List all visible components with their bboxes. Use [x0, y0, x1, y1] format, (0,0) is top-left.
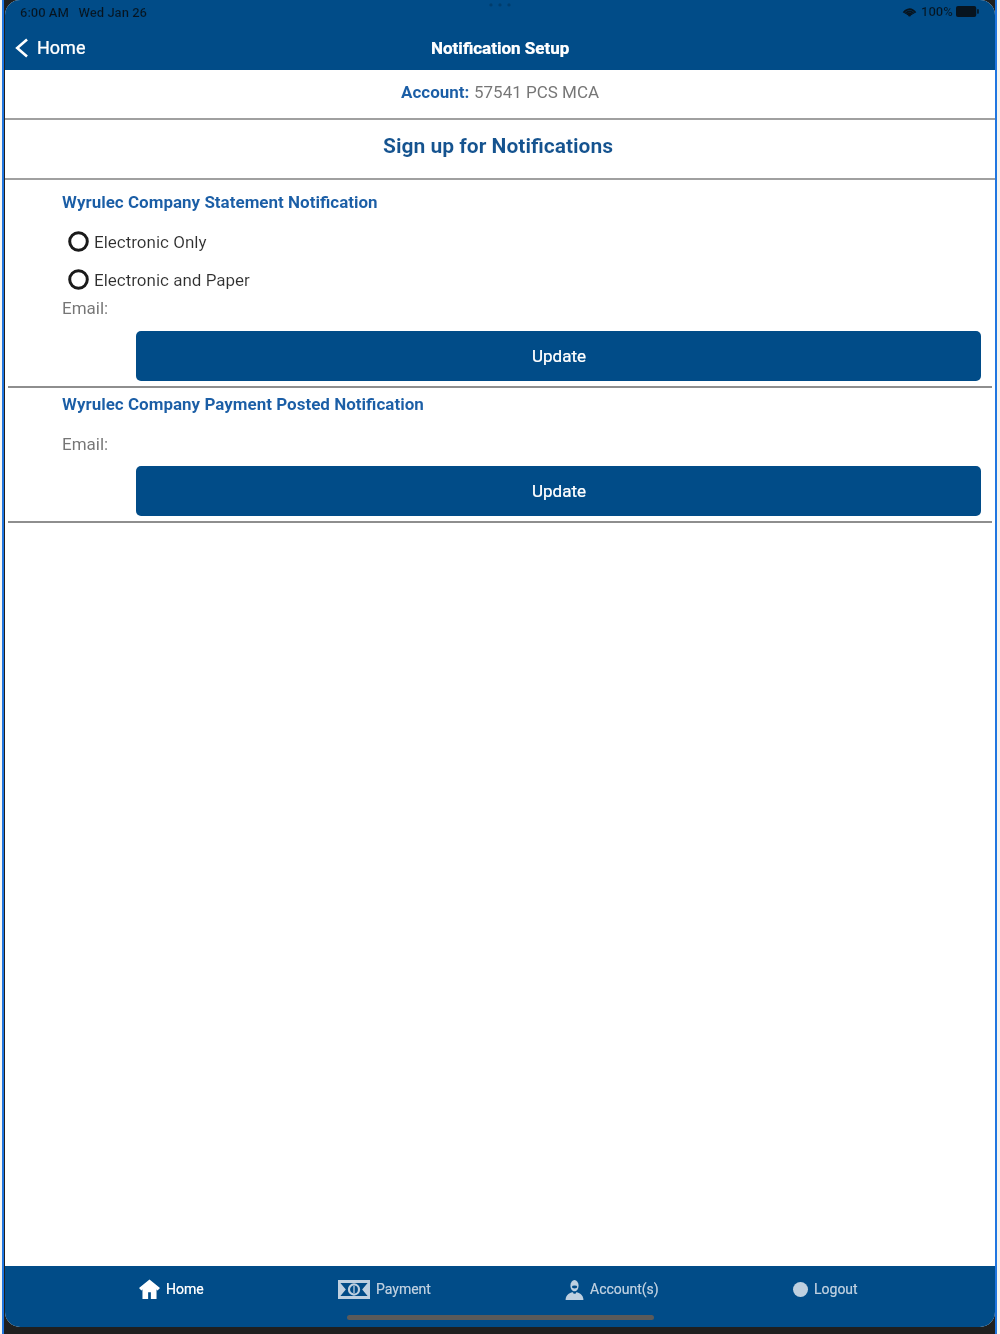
staticText: 100%: [921, 4, 953, 19]
staticText: 6:00 AM Wed Jan 26: [20, 5, 147, 20]
staticText: Electronic Only: [94, 232, 207, 252]
staticText: Electronic and Paper: [94, 270, 250, 290]
button[interactable]: Logout: [789, 1272, 862, 1306]
button[interactable]: Home: [135, 1272, 208, 1306]
button[interactable]: Electronic and Paper: [5, 269, 995, 290]
button[interactable]: Accounts: [561, 1272, 663, 1306]
staticText: Update: [532, 346, 586, 366]
staticText: Home: [37, 37, 86, 58]
staticText: Sign up for Notifications: [383, 134, 614, 159]
staticText: Email:: [62, 298, 109, 318]
button[interactable]: Payment: [334, 1272, 435, 1306]
staticText: Email:: [62, 434, 109, 454]
staticText: Account(s): [590, 1281, 659, 1297]
button[interactable]: Update: [136, 466, 981, 516]
staticText: Wyrulec Company Payment Posted Notificat…: [62, 394, 424, 414]
button[interactable]: Electronic Only: [5, 231, 995, 252]
staticText: Account:: [401, 82, 474, 102]
staticText: Payment: [376, 1281, 431, 1297]
staticText: Notification Setup: [431, 38, 570, 58]
staticText: Home: [166, 1281, 204, 1297]
button[interactable]: Update: [136, 331, 981, 381]
staticText: Update: [532, 481, 586, 501]
staticText: Wyrulec Company Statement Notification: [62, 192, 378, 212]
staticText: Logout: [814, 1281, 858, 1297]
button[interactable]: Home: [5, 31, 100, 64]
staticText: 57541 PCS MCA: [474, 82, 600, 102]
